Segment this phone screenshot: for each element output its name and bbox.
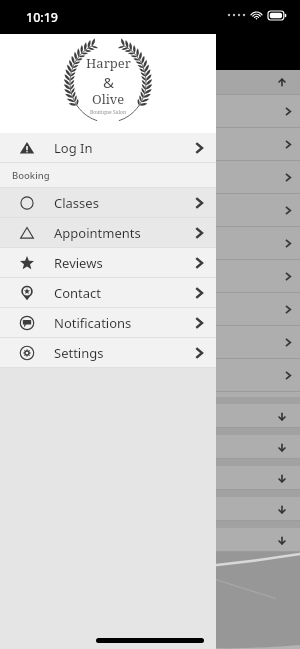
staticText: Boutique Salon [90,109,127,116]
button[interactable]: Appointments [0,218,216,248]
staticText: Notifications [54,314,132,332]
staticText: Appointments [54,224,141,242]
button[interactable]: Log In [0,133,216,163]
staticText: Booking [12,169,50,182]
staticText: Settings [54,344,104,362]
button[interactable]: Classes [0,188,216,218]
staticText: Reviews [54,254,103,272]
button[interactable]: Settings [0,338,216,368]
staticText: Classes [54,194,99,212]
button[interactable]: Contact [0,278,216,308]
staticText: 10:19 [26,9,59,26]
staticText: Contact [54,284,102,302]
staticText: Harper [86,54,131,72]
staticText: Log In [54,139,93,157]
staticText: Olive [92,90,125,108]
button[interactable]: Reviews [0,248,216,278]
button[interactable]: Notifications [0,308,216,338]
staticText: & [103,72,114,92]
